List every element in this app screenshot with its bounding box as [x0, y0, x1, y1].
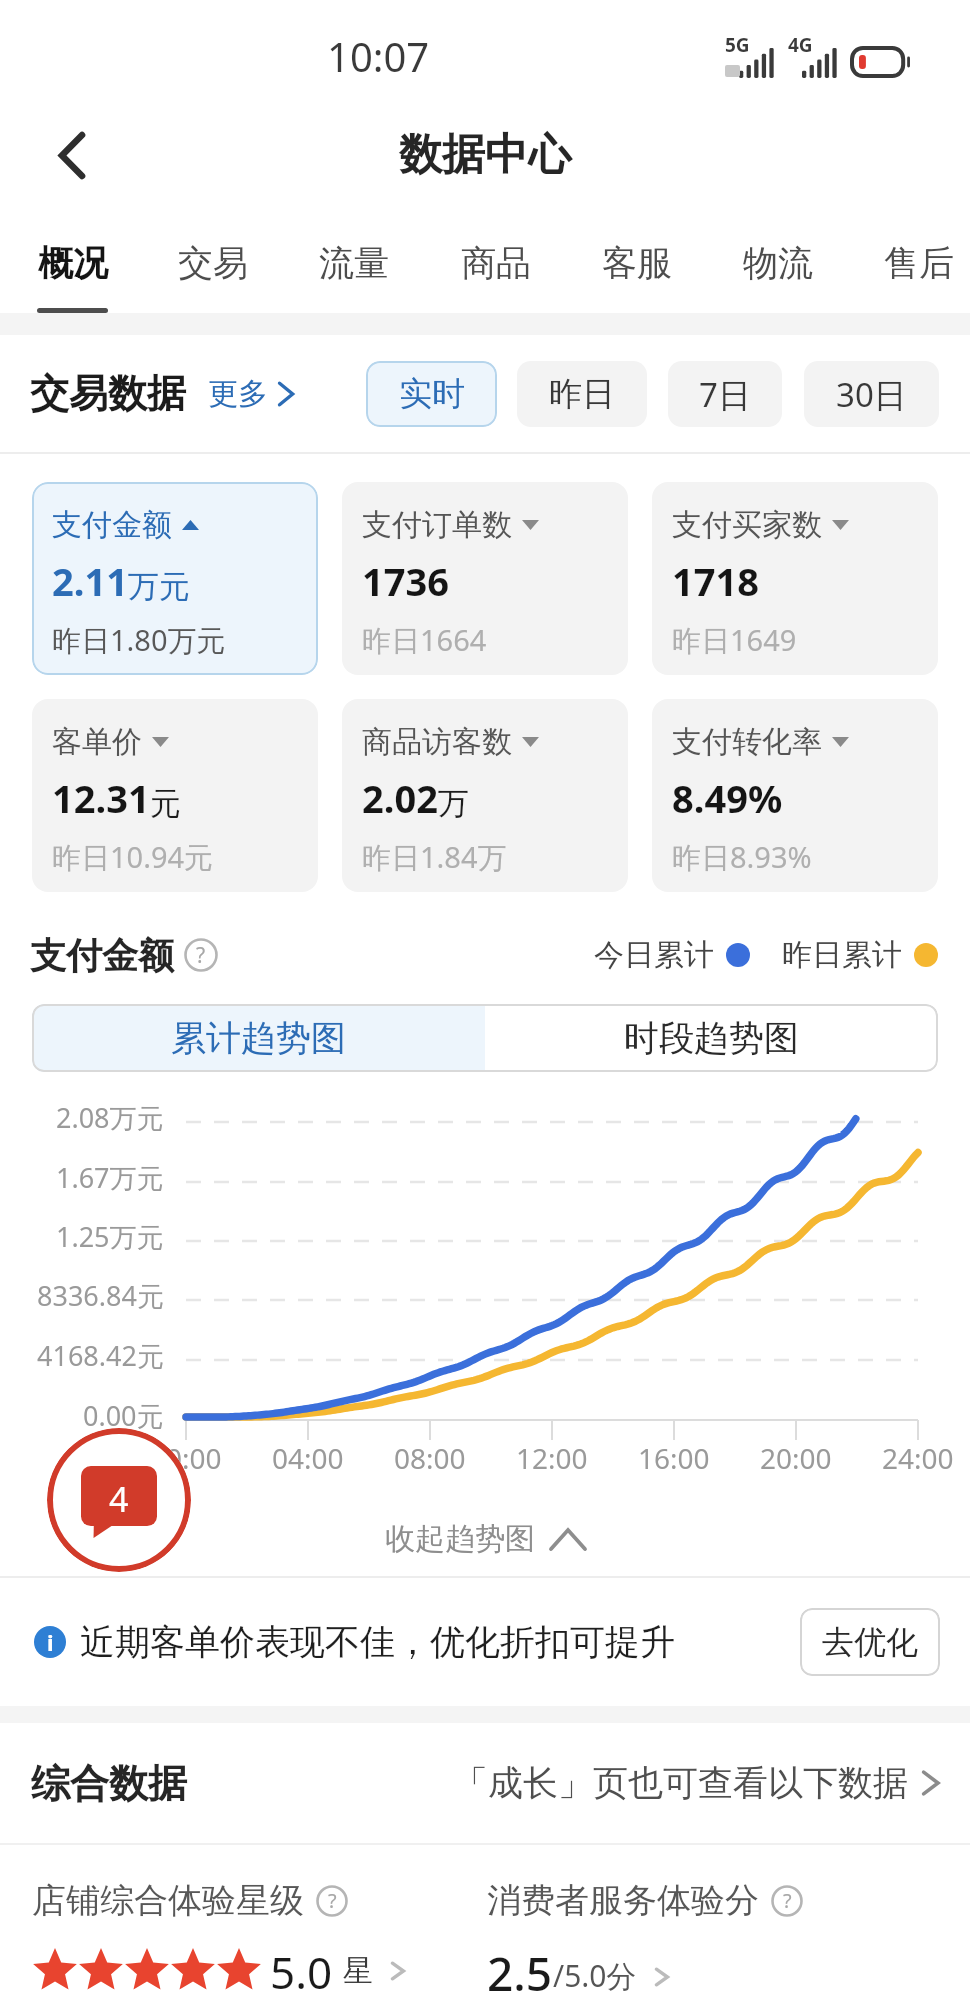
button[interactable]: 商品访客数: [342, 699, 628, 892]
staticText: 昨日累计: [782, 936, 902, 974]
staticText: 1.25万元: [56, 1218, 164, 1255]
staticText: 08:00: [394, 1439, 466, 1477]
staticText: 交易数据: [30, 369, 186, 418]
staticText: 万: [438, 784, 469, 823]
staticText: 客单价: [52, 723, 142, 761]
staticText: 累计趋势图: [171, 1016, 346, 1060]
button[interactable]: Customer messages, 4 unread: [47, 1428, 191, 1572]
staticText: 2.11: [52, 555, 128, 607]
staticText: 2.02: [362, 772, 438, 824]
staticText: 昨日1.84万: [362, 837, 507, 877]
staticText: 支付订单数: [362, 506, 512, 544]
staticText: 4: [109, 1476, 129, 1522]
staticText: 商品访客数: [362, 723, 512, 761]
staticText: 8.49%: [672, 772, 783, 824]
staticText: ?: [196, 940, 206, 969]
staticText: 数据中心: [399, 128, 571, 182]
button[interactable]: 收起趋势图: [0, 1502, 970, 1576]
staticText: 今日累计: [594, 936, 714, 974]
button[interactable]: 商品: [436, 241, 556, 313]
staticText: 昨日1664: [362, 620, 487, 660]
button[interactable]: 支付订单数: [342, 482, 628, 675]
staticText: 2.08万元: [56, 1099, 164, 1136]
staticText: 5G: [725, 32, 750, 58]
staticText: 去优化: [822, 1622, 918, 1662]
button[interactable]: 时段趋势图: [485, 1004, 938, 1072]
button[interactable]: 「成长」页也可查看以下数据: [453, 1761, 940, 1805]
staticText: 24:00: [882, 1439, 954, 1477]
staticText: 30日: [836, 372, 907, 417]
staticText: ?: [783, 1887, 792, 1914]
button[interactable]: 支付金额: [32, 482, 318, 675]
staticText: 星: [343, 1952, 373, 1990]
staticText: 1.67万元: [56, 1159, 164, 1196]
staticText: 7日: [699, 372, 751, 417]
staticText: 昨日1.80万元: [52, 620, 226, 660]
staticText: i: [47, 1627, 54, 1657]
staticText: 昨日: [549, 373, 615, 415]
button[interactable]: 实时: [366, 361, 497, 427]
staticText: 支付转化率: [672, 723, 822, 761]
staticText: 客服: [602, 241, 672, 285]
staticText: 支付买家数: [672, 506, 822, 544]
staticText: 近期客单价表现不佳，优化折扣可提升: [80, 1620, 675, 1664]
staticText: 实时: [399, 373, 465, 415]
staticText: ?: [328, 1887, 337, 1914]
button[interactable]: 2.5: [487, 1942, 670, 2000]
button[interactable]: 昨日: [517, 361, 647, 427]
staticText: 10:07: [327, 29, 430, 83]
staticText: 商品: [461, 241, 531, 285]
button[interactable]: 累计趋势图: [32, 1004, 485, 1072]
staticText: 12:00: [516, 1439, 588, 1477]
button[interactable]: 物流: [718, 241, 838, 313]
staticText: 更多: [208, 375, 268, 413]
staticText: 4G: [788, 32, 813, 58]
staticText: 元: [150, 784, 181, 823]
staticText: 综合数据: [31, 1759, 187, 1808]
button[interactable]: 客单价: [32, 699, 318, 892]
staticText: 4168.42元: [37, 1337, 164, 1374]
button[interactable]: 售后: [859, 241, 970, 313]
staticText: 物流: [743, 241, 813, 285]
button[interactable]: Back: [0, 105, 110, 205]
staticText: 5.0: [270, 1942, 333, 2000]
staticText: 交易: [178, 241, 248, 285]
staticText: 0.00元: [83, 1397, 164, 1434]
staticText: 昨日1649: [672, 620, 797, 660]
staticText: 00:00: [150, 1439, 222, 1477]
staticText: 支付金额: [52, 506, 172, 544]
staticText: 时段趋势图: [624, 1016, 799, 1060]
staticText: 支付金额: [30, 933, 174, 978]
staticText: 16:00: [638, 1439, 710, 1477]
button[interactable]: 支付买家数: [652, 482, 938, 675]
button[interactable]: 更多: [208, 375, 294, 413]
staticText: 万元: [128, 567, 190, 606]
button[interactable]: 30日: [804, 361, 939, 427]
staticText: 1736: [362, 555, 449, 607]
staticText: 昨日10.94元: [52, 837, 214, 877]
staticText: 2.5: [487, 1942, 553, 2000]
staticText: 8336.84元: [37, 1277, 164, 1314]
staticText: 概况: [38, 241, 108, 285]
staticText: 昨日8.93%: [672, 837, 812, 877]
staticText: 12.31: [52, 772, 150, 824]
staticText: 20:00: [760, 1439, 832, 1477]
button[interactable]: 客服: [577, 241, 697, 313]
staticText: 流量: [319, 241, 389, 285]
button[interactable]: 概况: [12, 241, 132, 313]
button[interactable]: 5.0: [32, 1942, 406, 2000]
button[interactable]: 流量: [294, 241, 414, 313]
button[interactable]: 支付转化率: [652, 699, 938, 892]
staticText: 「成长」页也可查看以下数据: [453, 1761, 908, 1805]
button[interactable]: 交易: [153, 241, 273, 313]
staticText: 售后: [884, 241, 954, 285]
staticText: 消费者服务体验分: [487, 1879, 759, 1922]
staticText: 04:00: [272, 1439, 344, 1477]
staticText: 收起趋势图: [385, 1520, 535, 1558]
staticText: /5.0分: [553, 1955, 637, 1996]
button[interactable]: 7日: [668, 361, 782, 427]
staticText: 1718: [672, 555, 759, 607]
staticText: 店铺综合体验星级: [32, 1879, 304, 1922]
button[interactable]: 去优化: [800, 1608, 940, 1676]
